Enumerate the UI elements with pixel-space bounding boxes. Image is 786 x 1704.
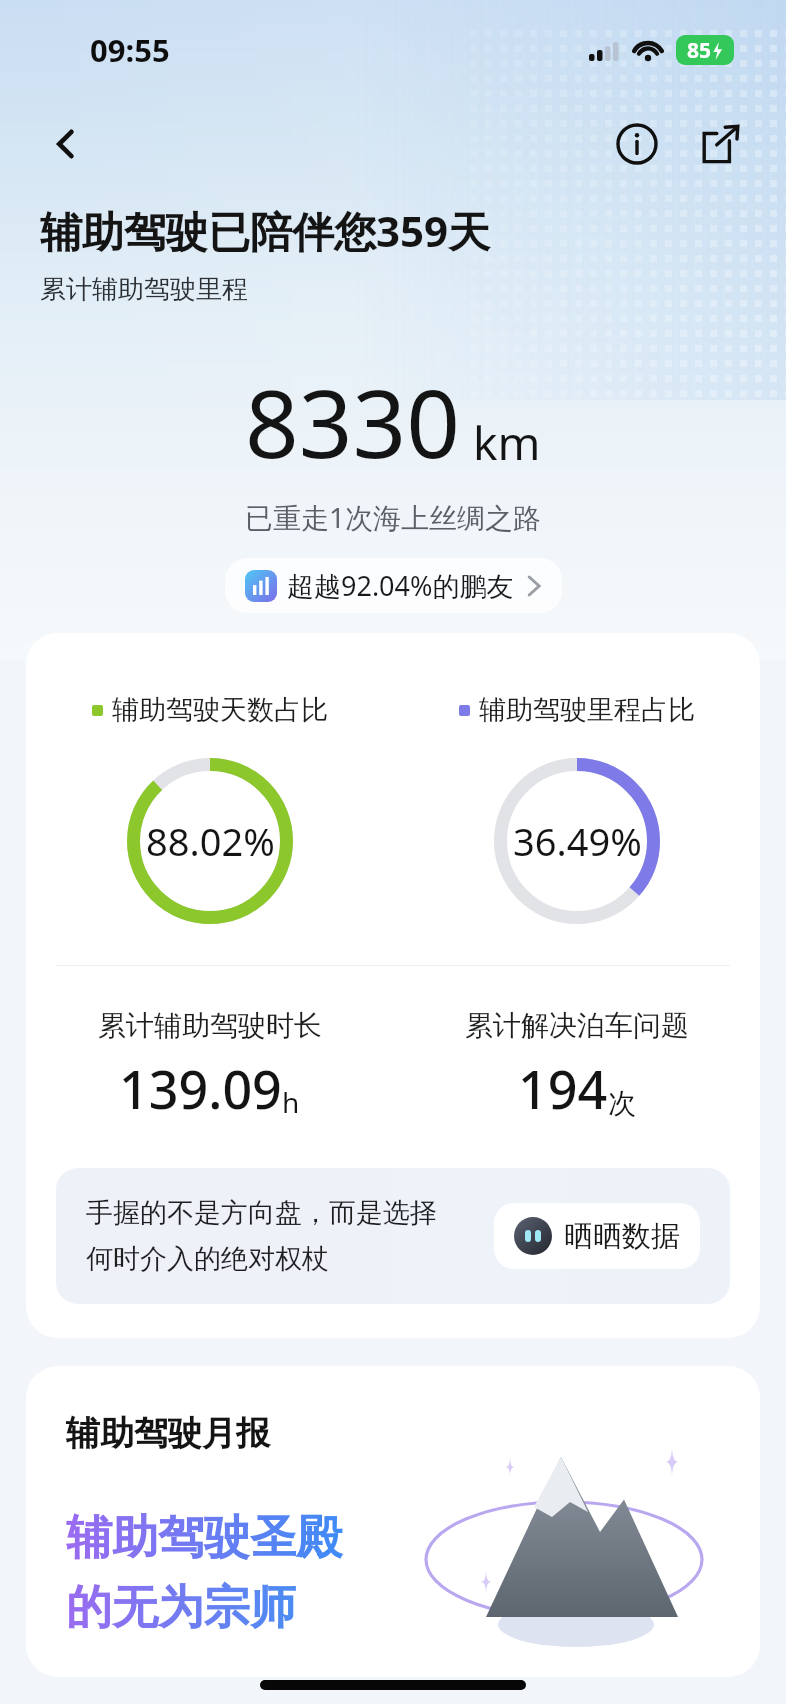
staticText: 累计解决泊车问题 — [465, 1008, 689, 1043]
staticText: 累计辅助驾驶里程 — [40, 273, 248, 306]
button[interactable]: Info — [606, 113, 668, 175]
staticText: 晒晒数据 — [564, 1218, 680, 1255]
staticText: 辅助驾驶天数占比 — [112, 693, 328, 727]
staticText: 的无为宗师 — [66, 1579, 296, 1637]
staticText: 次 — [608, 1086, 636, 1121]
button[interactable]: 晒晒数据 — [494, 1203, 700, 1269]
staticText: 手握的不是方向盘，而是选择 — [86, 1196, 437, 1230]
button[interactable]: 辅助驾驶月报 — [26, 1366, 760, 1677]
button[interactable]: Share — [690, 113, 752, 175]
staticText: 辅助驾驶月报 — [66, 1412, 270, 1455]
staticText: 累计辅助驾驶时长 — [98, 1008, 322, 1043]
staticText: 36.49% — [513, 815, 642, 867]
staticText: h — [282, 1083, 300, 1121]
staticText: 85 — [687, 36, 712, 65]
staticText: 139.09 — [119, 1053, 282, 1124]
staticText: 辅助驾驶圣殿 — [66, 1509, 342, 1567]
staticText: 辅助驾驶里程占比 — [479, 693, 695, 727]
staticText: 辅助驾驶已陪伴您359天 — [40, 202, 491, 259]
staticText: 已重走1次海上丝绸之路 — [245, 498, 542, 536]
staticText: km — [473, 411, 541, 474]
button[interactable]: Back — [38, 116, 94, 172]
button[interactable]: 超越92.04%的鹏友 — [225, 558, 562, 613]
staticText: 88.02% — [146, 815, 275, 867]
staticText: 09:55 — [90, 29, 170, 71]
staticText: 8330 — [245, 358, 461, 486]
staticText: 何时介入的绝对权杖 — [86, 1242, 329, 1276]
staticText: 超越92.04%的鹏友 — [287, 567, 514, 604]
staticText: 194 — [518, 1053, 608, 1124]
